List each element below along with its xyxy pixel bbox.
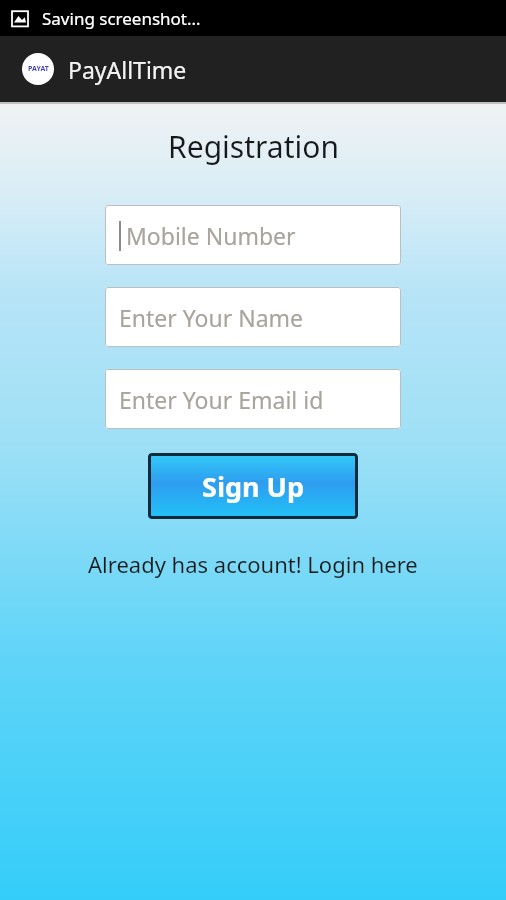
button[interactable]: Enter Your Email id — [105, 369, 401, 429]
button[interactable]: Mobile Number — [105, 205, 401, 265]
staticText: Registration — [168, 126, 339, 167]
staticText: PAYAT — [28, 64, 49, 74]
staticText: PayAllTime — [68, 54, 187, 85]
staticText: Saving screenshot… — [42, 7, 201, 30]
staticText: Enter Your Name — [119, 302, 304, 333]
staticText: Mobile Number — [126, 220, 296, 251]
button[interactable]: PayAllTime logo — [22, 53, 54, 85]
button[interactable]: Sign Up — [148, 453, 358, 519]
button[interactable]: Already has account! Login here — [80, 545, 426, 583]
staticText: Enter Your Email id — [119, 384, 324, 415]
button[interactable]: Enter Your Name — [105, 287, 401, 347]
staticText: Sign Up — [202, 468, 305, 505]
staticText: Already has account! Login here — [88, 549, 418, 579]
